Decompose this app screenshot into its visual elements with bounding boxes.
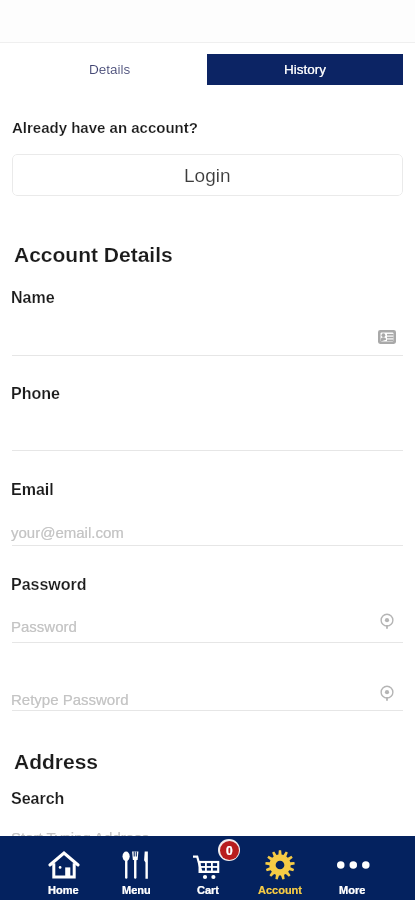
staticText: Address [14, 750, 99, 773]
staticText: Cart [197, 884, 220, 896]
other: Choose from contacts [378, 330, 396, 344]
staticText: Email [11, 481, 54, 499]
staticText: Details [89, 62, 131, 77]
staticText: More [339, 884, 366, 896]
other: Toggle password visibility [380, 686, 394, 700]
button[interactable]: Account [244, 836, 316, 900]
staticText: Home [48, 884, 79, 896]
staticText: Already have an account? [12, 119, 198, 136]
staticText: Account [258, 884, 302, 896]
staticText: Password [11, 576, 87, 594]
staticText: Account Details [14, 243, 173, 266]
button[interactable]: Login [12, 154, 403, 196]
staticText: Login [184, 165, 231, 186]
button[interactable]: Home [27, 836, 100, 900]
button[interactable]: History [207, 54, 403, 85]
staticText: Start Typing Address... [11, 829, 162, 846]
staticText: Retype Password [11, 691, 129, 708]
button[interactable]: Menu [100, 836, 172, 900]
button[interactable]: 0 [172, 836, 244, 900]
button[interactable]: Details [12, 54, 207, 85]
staticText: Phone [11, 385, 60, 403]
staticText: your@email.com [11, 524, 124, 541]
staticText: 0 [226, 844, 233, 857]
staticText: Password [11, 618, 77, 635]
staticText: Search [11, 790, 65, 808]
staticText: Name [11, 289, 55, 307]
other: Toggle password visibility [380, 614, 394, 628]
button[interactable]: More [316, 836, 388, 900]
staticText: Menu [122, 884, 151, 896]
staticText: History [284, 62, 327, 77]
